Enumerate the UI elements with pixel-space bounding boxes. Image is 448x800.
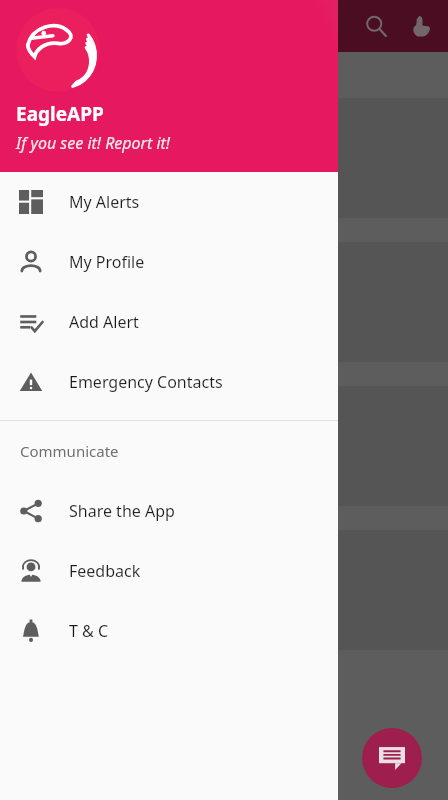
button[interactable]: Messages	[362, 728, 422, 788]
button[interactable]: My Profile	[0, 232, 338, 292]
button[interactable]: Feedback	[0, 541, 338, 601]
button[interactable]: Add Alert	[0, 292, 338, 352]
button[interactable]	[8, 530, 448, 650]
button[interactable]: Emergency Contacts	[0, 352, 338, 412]
button[interactable]: My Alerts	[0, 172, 338, 232]
staticText: Feedback	[69, 560, 141, 582]
button[interactable]	[8, 98, 448, 218]
staticText: Add Alert	[69, 311, 139, 333]
staticText: T & C	[69, 620, 109, 642]
button[interactable]: Search	[352, 2, 400, 50]
staticText: EagleAPP	[16, 101, 104, 127]
button[interactable]	[8, 242, 448, 362]
staticText: Communicate	[20, 441, 119, 461]
staticText: Emergency Contacts	[69, 371, 223, 393]
staticText: My Profile	[69, 251, 145, 273]
button[interactable]: Share the App	[0, 481, 338, 541]
button[interactable]: Touch	[400, 2, 442, 50]
staticText: If you see it! Report it!	[16, 132, 171, 154]
staticText: My Alerts	[69, 191, 140, 213]
button[interactable]	[8, 386, 448, 506]
button[interactable]: T & C	[0, 601, 338, 661]
staticText: Share the App	[69, 500, 175, 522]
